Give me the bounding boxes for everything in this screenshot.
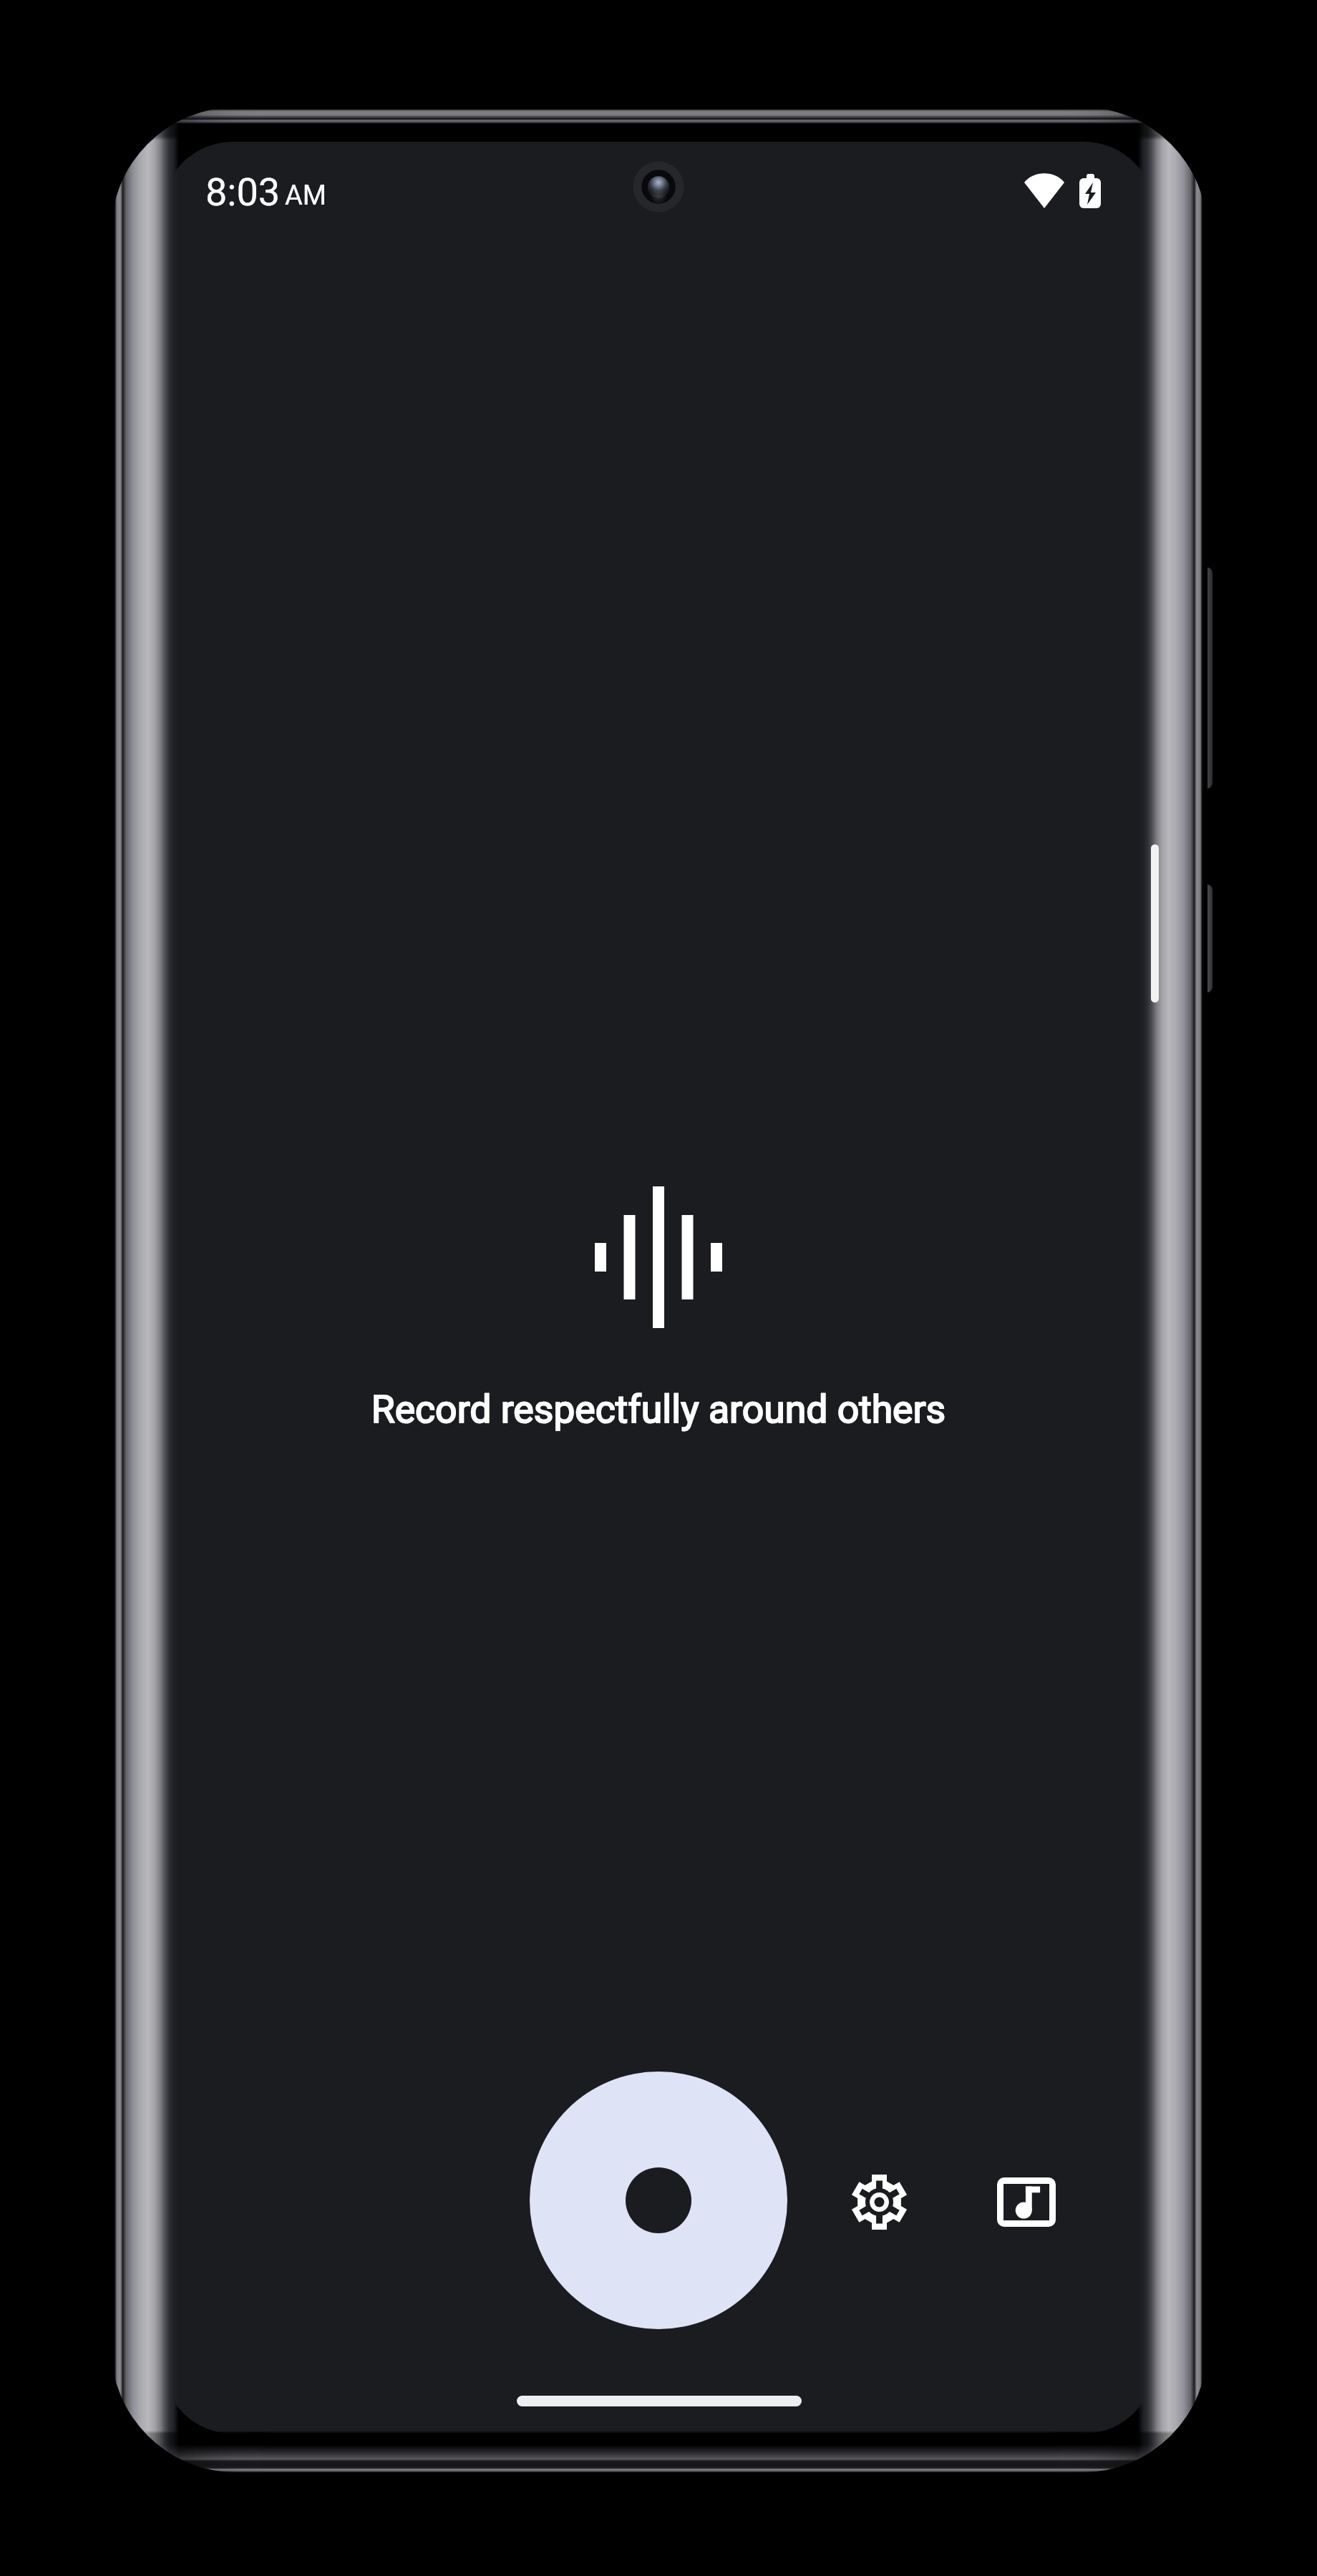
staticText: Record respectfully around others	[162, 1387, 1155, 1432]
button[interactable]: Start recording	[530, 2072, 787, 2329]
button[interactable]: Settings	[830, 2153, 928, 2250]
staticText: 8:03	[205, 170, 281, 215]
staticText: AM	[285, 180, 326, 212]
button[interactable]: Recordings	[978, 2153, 1075, 2250]
